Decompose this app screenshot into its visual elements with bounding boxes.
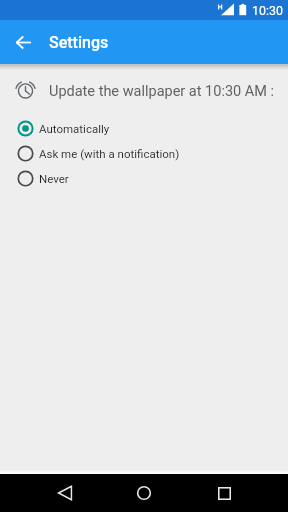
- staticText: Automatically: [39, 122, 110, 135]
- button[interactable]: Home: [125, 474, 163, 512]
- button[interactable]: Automatically: [0, 116, 288, 141]
- staticText: Ask me (with a notification): [39, 147, 180, 160]
- staticText: Never: [39, 172, 69, 185]
- button[interactable]: Recent apps: [205, 474, 243, 512]
- button[interactable]: Navigate up: [7, 26, 39, 58]
- button[interactable]: Ask me (with a notification): [0, 141, 288, 166]
- staticText: Update the wallpaper at 10:30 AM :: [49, 83, 275, 100]
- button[interactable]: Never: [0, 166, 288, 191]
- staticText: 10:30: [252, 3, 283, 18]
- staticText: Settings: [49, 33, 109, 52]
- button[interactable]: Back: [46, 474, 84, 512]
